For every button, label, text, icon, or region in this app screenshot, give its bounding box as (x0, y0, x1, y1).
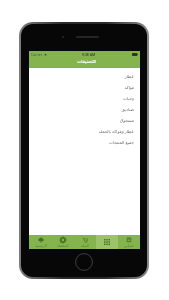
button[interactable]: المفضلة (52, 235, 74, 249)
button[interactable]: صناديق (29, 104, 140, 115)
button[interactable]: الرئيسية (29, 235, 52, 249)
button[interactable]: وجبات (29, 93, 140, 104)
button[interactable]: السلة (74, 235, 96, 249)
staticText: وجبات (122, 96, 134, 101)
staticText: السلة (81, 244, 89, 248)
button[interactable]: حسابي (118, 235, 140, 249)
staticText: Carrier (31, 52, 43, 57)
staticText: فواكه (124, 85, 134, 90)
button[interactable]: عطار (29, 71, 140, 82)
button[interactable]: مسحوق (29, 115, 140, 126)
staticText: 9:38 AM (82, 52, 96, 57)
button[interactable]: عطار وفواكه بالجملة (29, 126, 140, 137)
staticText: المفضلة (57, 244, 69, 248)
staticText: حسابي (124, 244, 134, 248)
button[interactable]: Categories (96, 235, 118, 249)
staticText: عطار (124, 74, 134, 79)
staticText: عطار وفواكه بالجملة (98, 129, 134, 135)
staticText: صناديق (121, 107, 134, 112)
staticText: جميع المنتجات (109, 140, 134, 146)
staticText: مسحوق (119, 118, 134, 123)
button[interactable]: فواكه (29, 82, 140, 93)
staticText: الرئيسية (35, 244, 47, 248)
button[interactable]: جميع المنتجات (29, 137, 140, 148)
staticText: التصنيفات (77, 59, 96, 64)
